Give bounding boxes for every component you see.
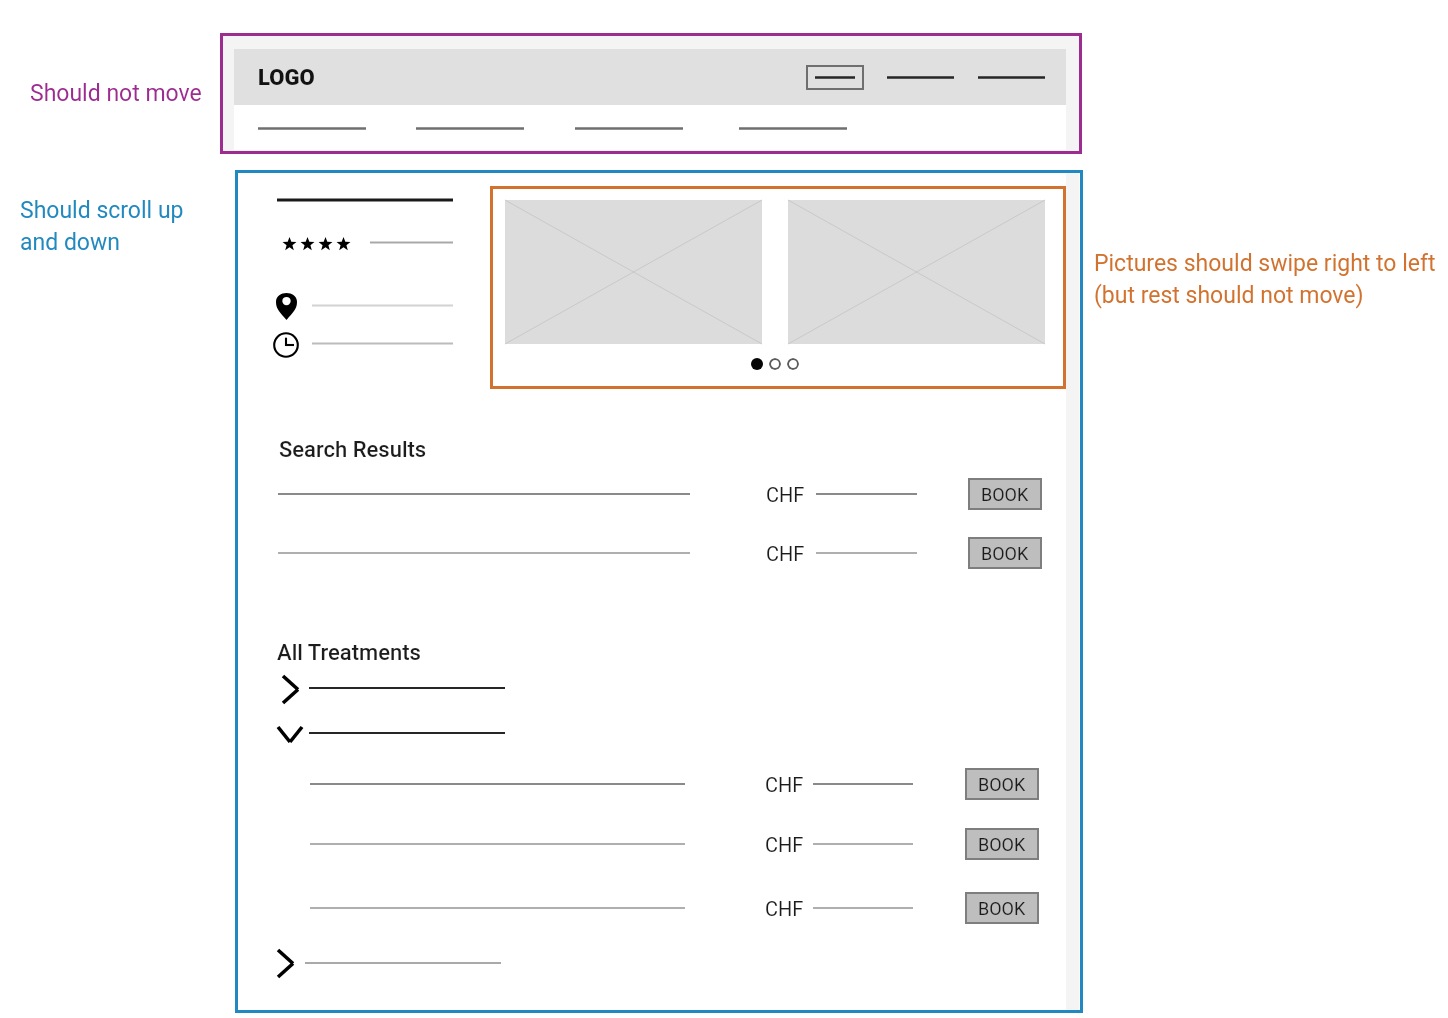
button[interactable]: Page 3 bbox=[787, 358, 799, 370]
button[interactable]: BOOK bbox=[965, 892, 1039, 924]
button[interactable]: Tab 1 bbox=[246, 109, 378, 147]
staticText: CHF bbox=[766, 542, 805, 565]
button[interactable]: Expand treatment category bbox=[270, 668, 515, 710]
staticText: LOGO bbox=[258, 65, 315, 91]
button[interactable]: Rating 4 stars bbox=[280, 232, 354, 256]
button[interactable]: Page 2 bbox=[769, 358, 781, 370]
button[interactable]: Tab 2 bbox=[404, 109, 536, 147]
staticText: CHF bbox=[766, 483, 805, 506]
button[interactable]: Location bbox=[276, 291, 297, 320]
button[interactable]: Page 1 bbox=[751, 358, 763, 370]
button[interactable]: BOOK bbox=[965, 768, 1039, 800]
button[interactable]: Search bbox=[806, 65, 864, 90]
button[interactable]: Expand treatment category bbox=[268, 944, 508, 984]
staticText: Pictures should swipe right to left (but… bbox=[1094, 250, 1436, 308]
button[interactable]: Tab 4 bbox=[727, 109, 859, 147]
button[interactable]: BOOK bbox=[968, 537, 1042, 569]
button[interactable]: Search result item bbox=[278, 533, 690, 573]
staticText: BOOK bbox=[978, 834, 1026, 855]
button[interactable]: BOOK bbox=[965, 828, 1039, 860]
button[interactable]: Menu bbox=[879, 65, 962, 90]
button[interactable]: BOOK bbox=[968, 478, 1042, 510]
staticText: CHF bbox=[765, 773, 804, 796]
button[interactable]: Collapse treatment category bbox=[270, 715, 515, 753]
staticText: Search Results bbox=[279, 437, 427, 463]
staticText: CHF bbox=[765, 833, 804, 856]
button[interactable]: Treatment item bbox=[310, 888, 685, 928]
staticText: BOOK bbox=[978, 774, 1026, 795]
staticText: All Treatments bbox=[277, 640, 421, 666]
staticText: BOOK bbox=[981, 484, 1029, 505]
button[interactable]: Treatment item bbox=[310, 764, 685, 804]
staticText: Should not move bbox=[30, 80, 202, 107]
staticText: Should scroll up and down bbox=[20, 197, 184, 255]
staticText: BOOK bbox=[978, 898, 1026, 919]
button[interactable]: Tab 3 bbox=[563, 109, 695, 147]
button[interactable]: Opening hours bbox=[273, 332, 299, 358]
button[interactable]: Treatment item bbox=[310, 824, 685, 864]
staticText: CHF bbox=[765, 897, 804, 920]
button[interactable]: Search result item bbox=[278, 474, 690, 514]
staticText: BOOK bbox=[981, 543, 1029, 564]
button[interactable]: Account bbox=[970, 65, 1053, 90]
